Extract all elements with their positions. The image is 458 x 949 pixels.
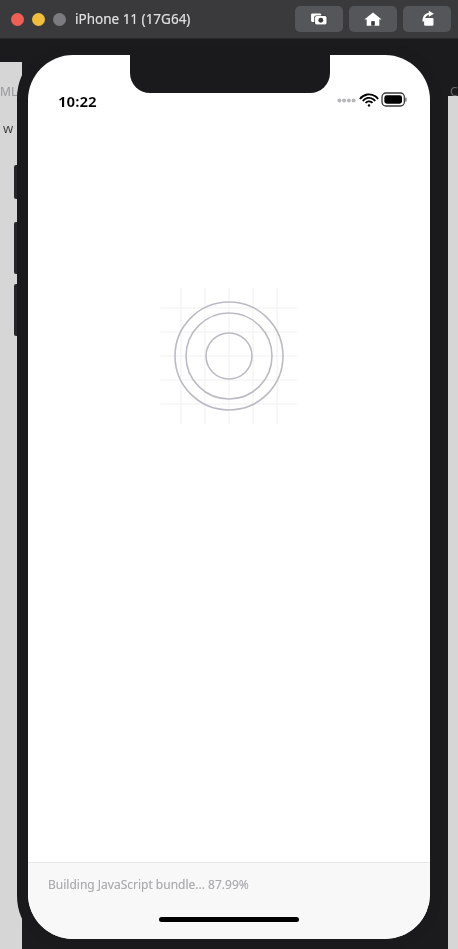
button[interactable]: Close	[11, 13, 24, 26]
staticText: 10:22	[58, 91, 97, 111]
button[interactable]: Home	[349, 6, 397, 32]
staticText: iPhone 11 (17G64)	[75, 10, 191, 28]
staticText: ML	[0, 83, 18, 99]
button[interactable]: Zoom	[53, 13, 66, 26]
staticText: Building JavaScript bundle... 87.99%	[48, 876, 249, 892]
staticText: C	[450, 83, 458, 99]
button[interactable]: Minimize	[32, 13, 45, 26]
button[interactable]: Take screenshot	[295, 6, 343, 32]
button[interactable]: Home indicator	[159, 917, 299, 922]
button[interactable]: Share	[403, 6, 451, 32]
staticText: w	[3, 119, 14, 137]
